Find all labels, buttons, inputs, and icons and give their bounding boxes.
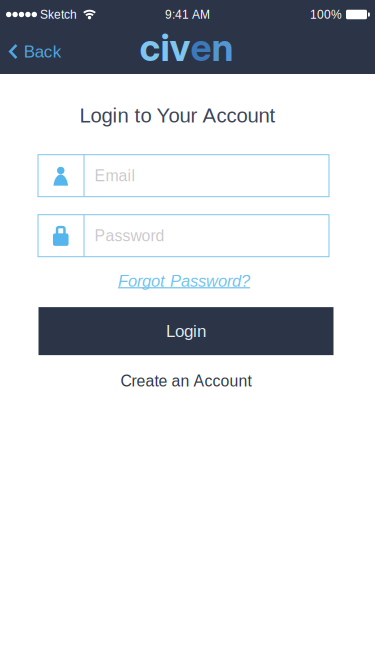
- staticText: Login to Your Account: [79, 104, 275, 127]
- staticText: v: [169, 25, 190, 70]
- staticText: Sketch: [40, 8, 77, 21]
- staticText: Back: [24, 42, 62, 61]
- staticText: 100%: [310, 8, 342, 21]
- button[interactable]: Create an Account: [120, 372, 251, 390]
- button[interactable]: Back: [0, 41, 62, 60]
- staticText: c: [139, 25, 160, 70]
- button[interactable]: Forgot Password?: [118, 272, 250, 290]
- staticText: Create an Account: [120, 372, 251, 390]
- staticText: i: [160, 25, 169, 70]
- staticText: 9:41 AM: [165, 8, 210, 21]
- staticText: n: [211, 25, 233, 70]
- staticText: Forgot Password?: [118, 272, 250, 290]
- staticText: Email: [94, 167, 135, 185]
- button[interactable]: Login: [38, 307, 333, 355]
- staticText: Login: [166, 322, 206, 341]
- staticText: Password: [94, 227, 164, 245]
- button[interactable]: Password: [38, 215, 329, 257]
- staticText: e: [190, 25, 211, 70]
- button[interactable]: Email: [38, 155, 329, 197]
